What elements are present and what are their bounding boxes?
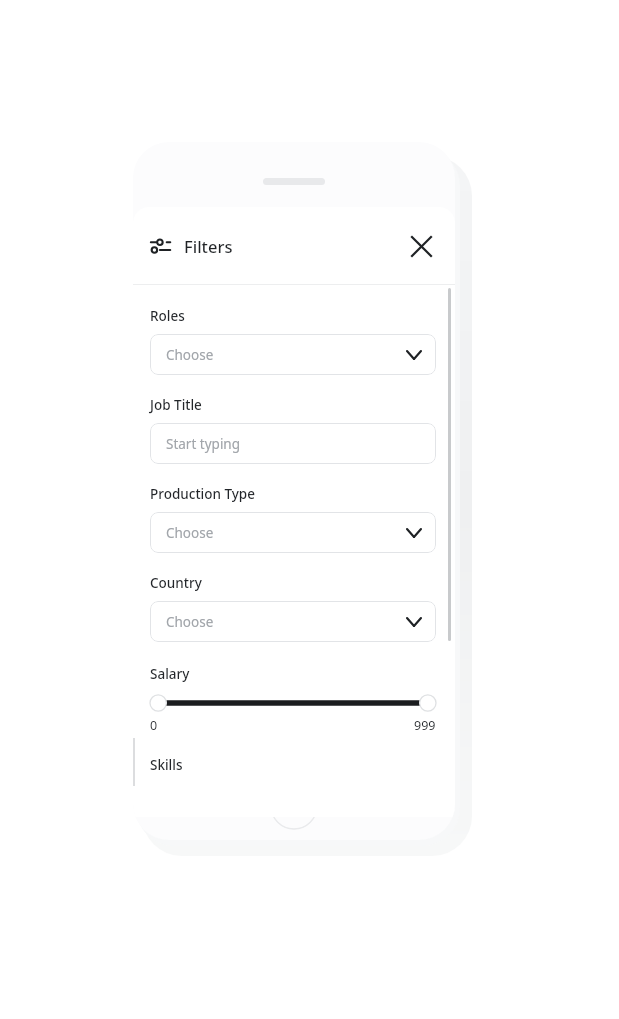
button[interactable]: Start typing — [150, 423, 436, 464]
staticText: Salary — [150, 665, 190, 683]
button[interactable]: Choose — [150, 334, 436, 375]
staticText: Country — [150, 574, 202, 592]
staticText: Skills — [150, 756, 183, 774]
button[interactable]: Choose — [150, 512, 436, 553]
staticText: Job Title — [150, 396, 202, 414]
staticText: Filters — [184, 235, 233, 257]
staticText: Choose — [166, 524, 214, 542]
staticText: 999 — [414, 717, 436, 734]
staticText: 0 — [150, 717, 158, 734]
staticText: Choose — [166, 346, 214, 364]
button[interactable]: Close — [404, 229, 438, 263]
button[interactable]: Choose — [150, 601, 436, 642]
staticText: Start typing — [166, 435, 241, 453]
button[interactable]: Salary range — [150, 693, 436, 713]
staticText: Production Type — [150, 485, 255, 503]
staticText: Roles — [150, 307, 185, 325]
staticText: Choose — [166, 613, 214, 631]
